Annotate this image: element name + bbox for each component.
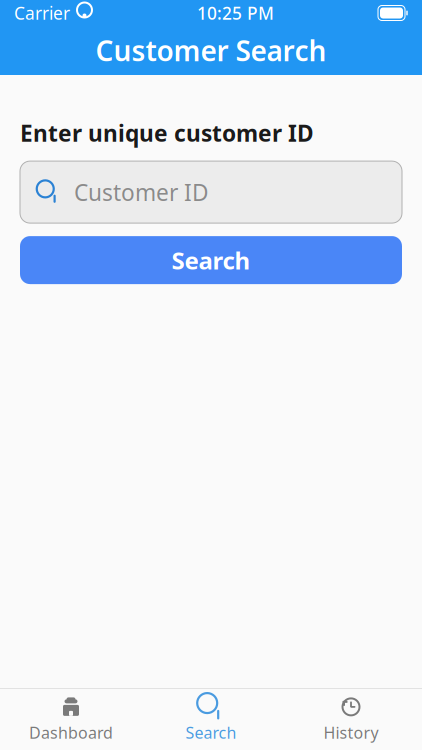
button[interactable]: Search [141,689,281,749]
staticText: History [323,722,378,743]
button[interactable]: Customer ID [20,161,402,223]
button[interactable]: Dashboard [1,689,141,749]
staticText: Search [185,722,236,743]
staticText: Enter unique customer ID [20,118,314,148]
staticText: Search [171,244,250,276]
staticText: 10:25 PM [197,1,274,24]
staticText: Dashboard [29,722,113,743]
button[interactable]: Search [20,236,402,284]
staticText: Customer ID [74,177,209,207]
staticText: Customer Search [95,32,326,69]
button[interactable]: History [281,689,421,749]
staticText: Carrier [14,1,70,24]
